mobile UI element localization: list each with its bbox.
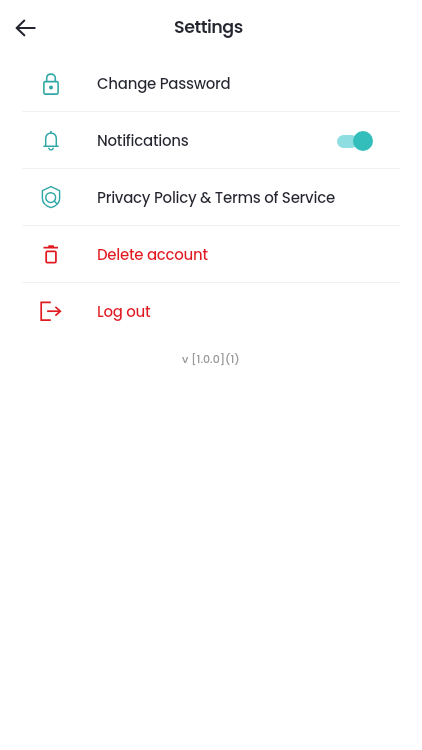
button[interactable]: Notifications bbox=[0, 112, 422, 168]
button[interactable]: Log out bbox=[0, 283, 422, 339]
button[interactable]: Back bbox=[6, 8, 46, 48]
staticText: Log out bbox=[97, 301, 151, 322]
staticText: Delete account bbox=[97, 244, 208, 265]
button[interactable]: Privacy Policy & Terms of Service bbox=[0, 169, 422, 225]
button[interactable]: Notifications toggle bbox=[337, 131, 373, 151]
staticText: Notifications bbox=[97, 130, 189, 151]
staticText: Settings bbox=[174, 15, 243, 40]
button[interactable]: Delete account bbox=[0, 226, 422, 282]
staticText: Privacy Policy & Terms of Service bbox=[97, 187, 335, 208]
staticText: v [1.0.0](1) bbox=[182, 351, 240, 366]
staticText: Change Password bbox=[97, 73, 231, 94]
button[interactable]: Change Password bbox=[0, 55, 422, 111]
